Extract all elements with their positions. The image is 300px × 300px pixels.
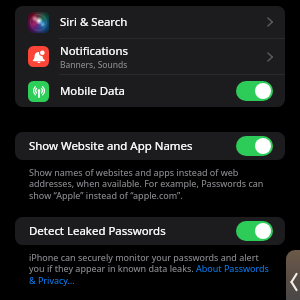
button[interactable]: Siri & Search — [15, 6, 285, 38]
staticText: Siri & Search — [60, 14, 128, 30]
staticText: iPhone can securely monitor your passwor… — [29, 251, 271, 287]
button[interactable]: Toggle — [236, 136, 273, 156]
button[interactable]: Back — [286, 250, 300, 300]
staticText: Show names of websites and apps instead … — [29, 166, 271, 202]
button[interactable]: Show Website and App Names — [15, 132, 285, 160]
button[interactable]: Toggle — [236, 221, 273, 241]
staticText: Banners, Sounds — [60, 59, 128, 71]
button[interactable]: Detect Leaked Passwords — [15, 217, 285, 245]
button[interactable]: Toggle — [236, 81, 273, 101]
staticText: Mobile Data — [60, 83, 125, 99]
button[interactable]: Mobile Data — [15, 75, 285, 107]
button[interactable]: Notifications — [15, 39, 285, 74]
staticText: Notifications — [60, 43, 129, 59]
staticText: Show Website and App Names — [29, 138, 193, 154]
staticText: Detect Leaked Passwords — [29, 223, 166, 239]
